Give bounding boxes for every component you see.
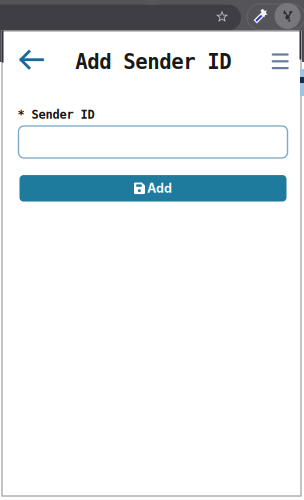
button[interactable]: Color picker	[248, 4, 272, 28]
button[interactable]: Extensions	[274, 3, 300, 29]
staticText: Add	[147, 181, 172, 196]
staticText: * Sender ID	[17, 107, 94, 121]
button[interactable]: Back	[11, 43, 51, 77]
staticText: Add Sender ID	[75, 50, 231, 74]
button[interactable]: Add	[19, 175, 286, 202]
button[interactable]: Bookmark	[210, 4, 234, 28]
button[interactable]: Menu	[263, 46, 297, 76]
